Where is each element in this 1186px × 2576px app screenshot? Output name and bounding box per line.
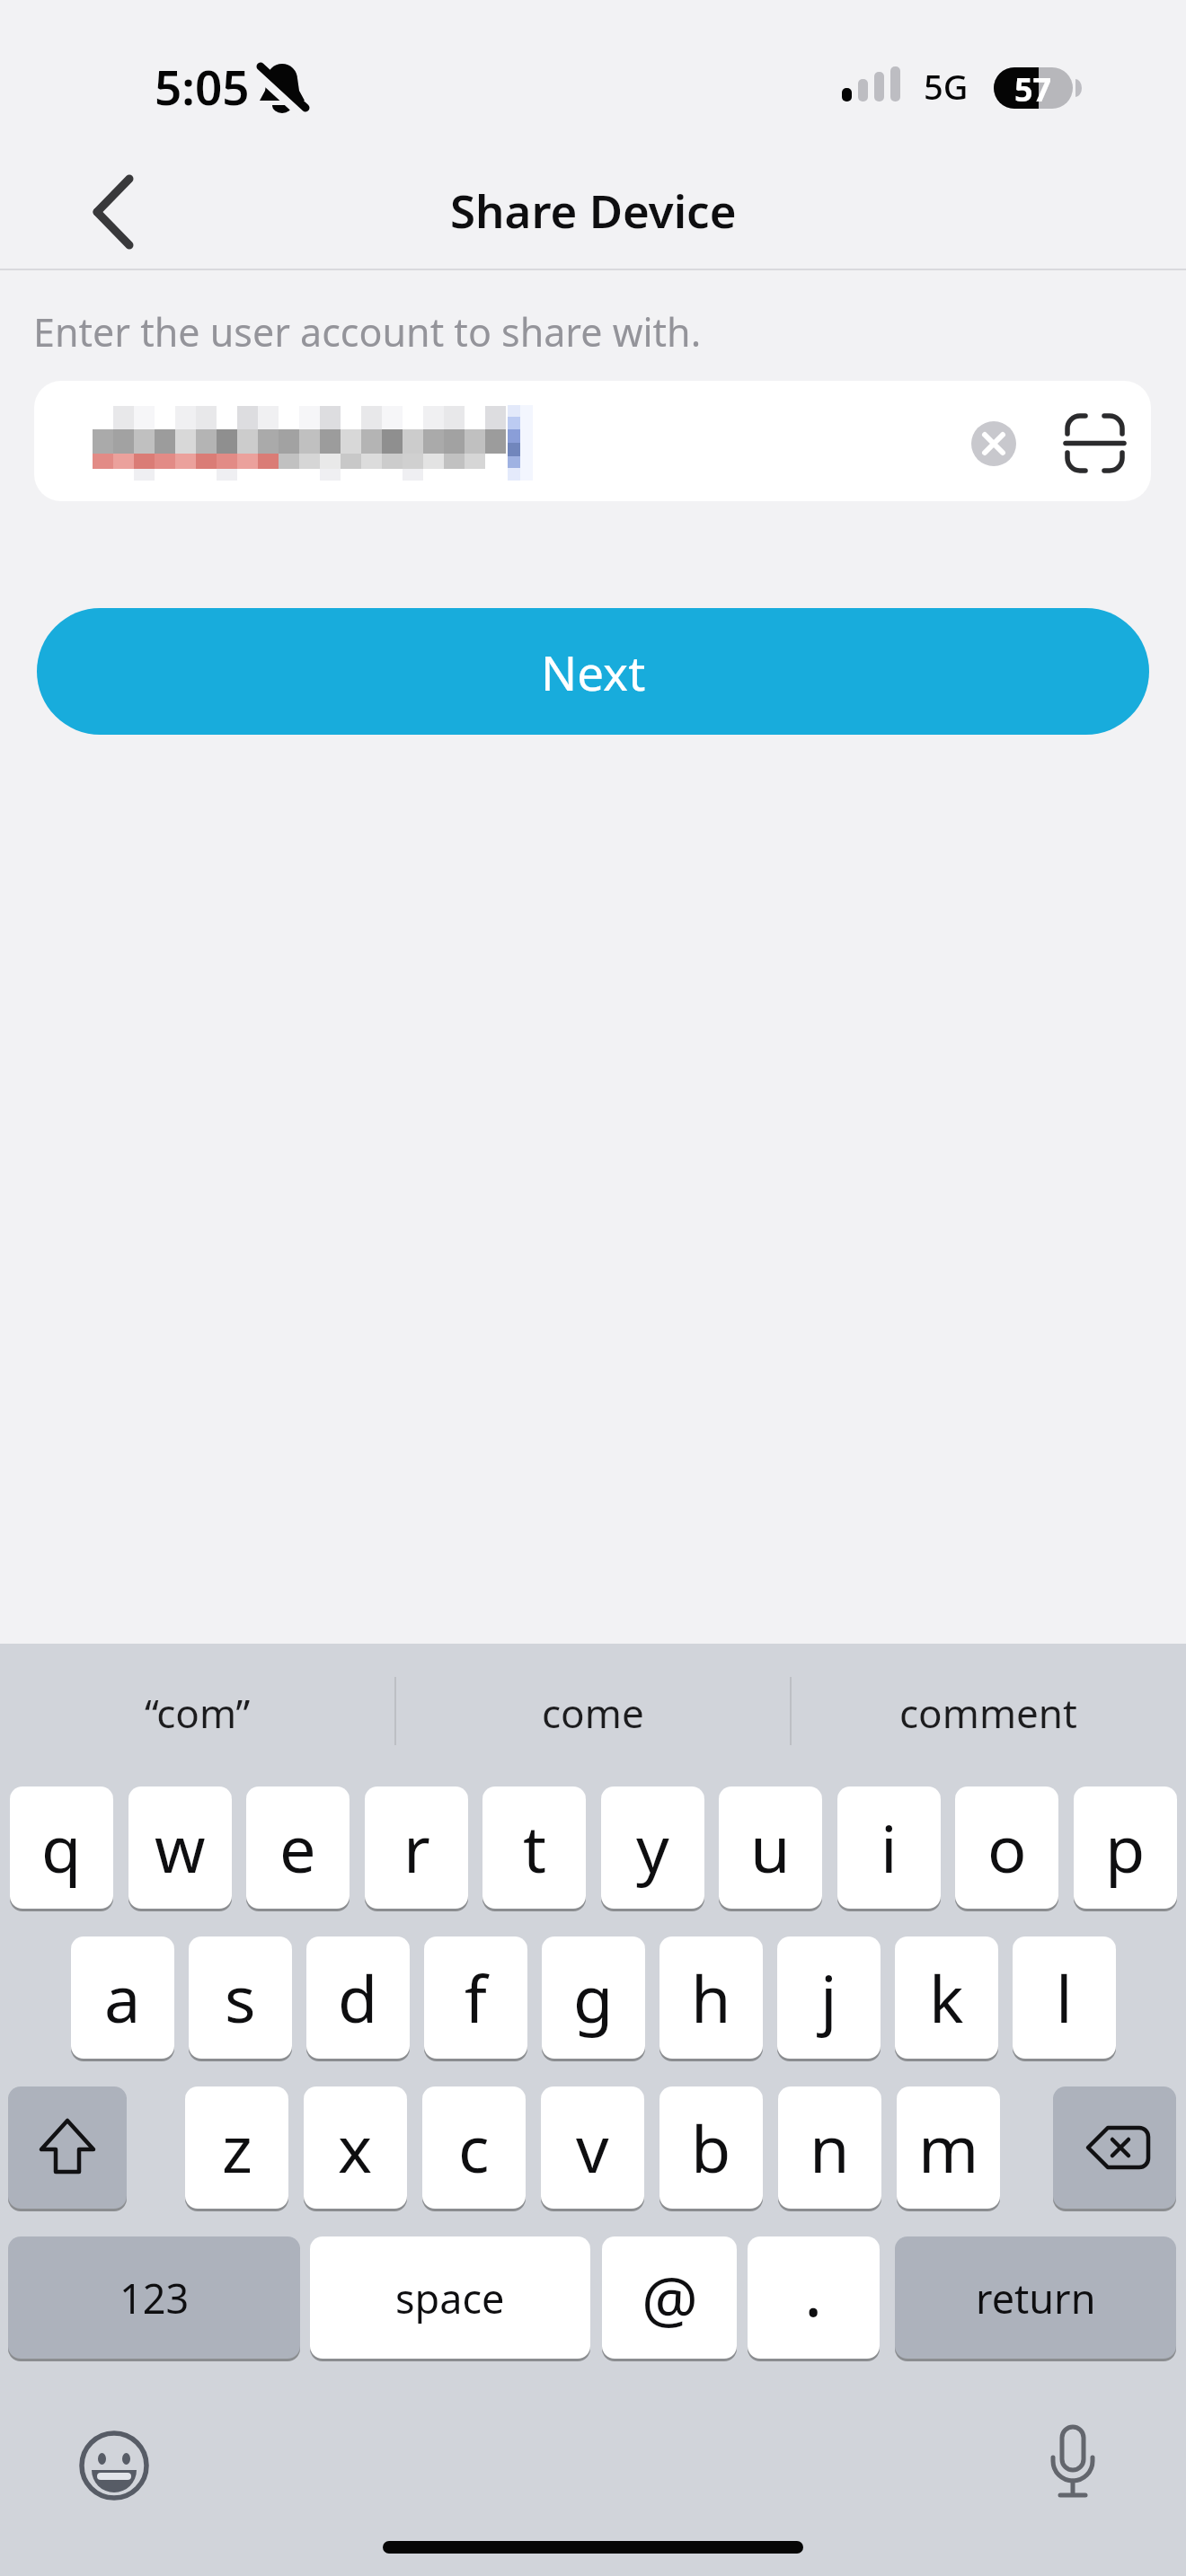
staticText: s [225, 1954, 256, 2042]
staticText: g [573, 1954, 614, 2042]
staticText: m [918, 2104, 979, 2192]
button[interactable]: k [895, 1936, 998, 2059]
staticText: w [155, 1804, 206, 1892]
staticText: . [804, 2244, 823, 2337]
button[interactable]: r [365, 1786, 468, 1909]
staticText: p [1105, 1804, 1146, 1892]
button[interactable] [1063, 411, 1126, 474]
button[interactable]: @ [602, 2236, 737, 2359]
staticText: h [691, 1954, 731, 2042]
button[interactable]: w [128, 1786, 232, 1909]
button[interactable]: space [310, 2236, 590, 2359]
button[interactable]: t [482, 1786, 586, 1909]
staticText: 5:05 [155, 54, 250, 119]
button[interactable] [72, 153, 171, 251]
button[interactable]: x [304, 2086, 407, 2209]
staticText: u [750, 1804, 791, 1892]
button[interactable] [34, 381, 1151, 501]
staticText: r [403, 1804, 430, 1892]
staticText: x [338, 2104, 373, 2192]
staticText: y [636, 1804, 669, 1892]
staticText: i [881, 1804, 898, 1892]
staticText: c [458, 2104, 490, 2192]
staticText: come [542, 1686, 644, 1740]
button[interactable]: n [778, 2086, 881, 2209]
button[interactable]: j [777, 1936, 881, 2059]
button[interactable]: Next [37, 608, 1149, 735]
button[interactable] [971, 421, 1016, 466]
staticText: Next [541, 640, 646, 704]
staticText: q [41, 1804, 82, 1892]
button[interactable]: e [246, 1786, 350, 1909]
button[interactable]: i [837, 1786, 941, 1909]
button[interactable] [1038, 2423, 1108, 2506]
button[interactable]: y [601, 1786, 704, 1909]
button[interactable]: l [1013, 1936, 1116, 2059]
button[interactable]: “com” [0, 1660, 395, 1766]
button[interactable]: 123 [8, 2236, 300, 2359]
button[interactable]: g [542, 1936, 645, 2059]
staticText: 57 [1014, 67, 1052, 109]
button[interactable]: u [719, 1786, 822, 1909]
button[interactable]: a [71, 1936, 174, 2059]
staticText: n [810, 2104, 850, 2192]
button[interactable] [8, 2086, 127, 2209]
staticText: Enter the user account to share with. [33, 305, 702, 358]
staticText: b [691, 2104, 731, 2192]
staticText: l [1056, 1954, 1073, 2042]
staticText: space [395, 2271, 505, 2325]
staticText: a [104, 1954, 141, 2042]
staticText: k [929, 1954, 964, 2042]
staticText: 5G [924, 63, 969, 110]
staticText: 123 [119, 2271, 190, 2325]
button[interactable]: . [748, 2236, 880, 2359]
staticText: @ [642, 2255, 698, 2341]
button[interactable]: h [659, 1936, 763, 2059]
staticText: d [338, 1954, 378, 2042]
staticText: f [465, 1954, 487, 2042]
button[interactable]: o [955, 1786, 1058, 1909]
button[interactable]: d [306, 1936, 410, 2059]
staticText: return [976, 2271, 1096, 2325]
button[interactable]: s [189, 1936, 292, 2059]
staticText: z [222, 2104, 252, 2192]
button[interactable]: c [422, 2086, 526, 2209]
button[interactable]: p [1074, 1786, 1177, 1909]
staticText: “com” [145, 1686, 251, 1740]
staticText: comment [899, 1686, 1077, 1740]
button[interactable]: v [541, 2086, 644, 2209]
button[interactable] [1053, 2086, 1176, 2209]
button[interactable]: q [10, 1786, 113, 1909]
button[interactable]: f [424, 1936, 527, 2059]
button[interactable]: m [897, 2086, 1000, 2209]
button[interactable]: z [185, 2086, 288, 2209]
button[interactable]: come [395, 1660, 791, 1766]
staticText: v [576, 2104, 609, 2192]
staticText: t [523, 1804, 546, 1892]
staticText: Share Device [450, 179, 737, 241]
staticText: j [820, 1954, 837, 2042]
button[interactable]: b [659, 2086, 763, 2209]
staticText: e [279, 1804, 316, 1892]
button[interactable] [79, 2430, 149, 2501]
button[interactable]: return [895, 2236, 1176, 2359]
button[interactable]: comment [791, 1660, 1186, 1766]
staticText: o [987, 1804, 1027, 1892]
